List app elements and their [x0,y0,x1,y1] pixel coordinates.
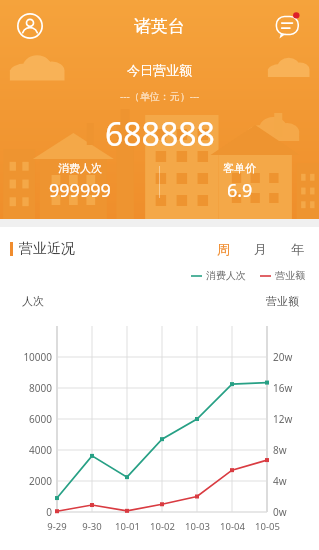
staticText: 6.9 [227,178,253,203]
staticText: 10-02 [150,520,175,533]
staticText: 20w [273,350,293,364]
staticText: 10-05 [255,520,280,533]
button[interactable]: 营业近况 [10,240,75,258]
button[interactable]: 周 [214,238,233,260]
staticText: 客单价 [223,161,256,175]
staticText: 0w [273,505,287,519]
staticText: 年 [291,241,304,257]
staticText: 8w [273,443,287,457]
staticText: 0 [46,505,52,519]
staticText: 今日营业额 [127,62,192,78]
button[interactable]: 年 [288,238,307,260]
staticText: 10000 [23,350,52,364]
staticText: 8000 [29,381,52,395]
staticText: 消费人次 [206,269,246,282]
staticText: 诸英台 [134,16,185,37]
staticText: 周 [217,241,230,257]
button[interactable]: Messages [269,6,309,46]
staticText: 16w [273,381,293,395]
staticText: 999999 [49,178,111,203]
staticText: 10-03 [185,520,210,533]
staticText: 9-29 [47,520,67,533]
button[interactable]: Profile [10,6,50,46]
staticText: 月 [254,241,267,257]
staticText: 10-01 [115,520,140,533]
staticText: 6000 [29,412,52,426]
staticText: 12w [273,412,293,426]
staticText: 10-04 [220,520,245,533]
staticText: 9-30 [82,520,102,533]
staticText: 营业额 [275,269,305,282]
staticText: 4000 [29,443,52,457]
staticText: 688888 [105,112,215,156]
staticText: 2000 [29,474,52,488]
staticText: 消费人次 [58,161,102,175]
staticText: 人次 [22,294,44,308]
staticText: 营业额 [266,294,299,308]
staticText: 营业近况 [19,240,75,258]
button[interactable]: 月 [251,238,270,260]
staticText: ---（单位：元）--- [120,89,200,103]
staticText: 4w [273,474,287,488]
